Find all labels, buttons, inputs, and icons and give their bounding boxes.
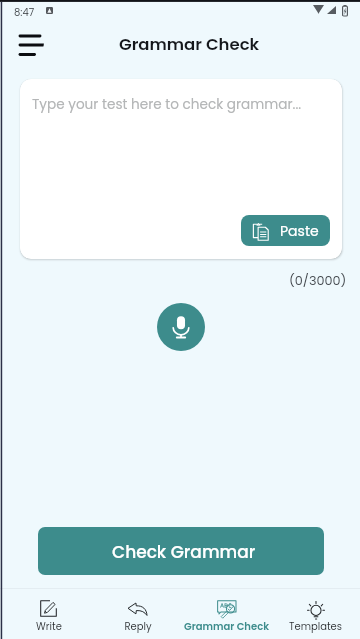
staticText: Grammar Check (119, 33, 260, 56)
staticText: Templates (289, 619, 342, 633)
button[interactable]: Write (4, 589, 93, 639)
button[interactable]: Menu (8, 24, 44, 60)
button[interactable]: Type your test here to check grammar... (20, 79, 342, 259)
staticText: (0/3000) (289, 272, 347, 290)
staticText: Reply (124, 619, 152, 633)
staticText: Write (36, 619, 62, 633)
button[interactable]: Templates (271, 589, 360, 639)
staticText: Grammar Check (184, 619, 269, 633)
button[interactable]: Check Grammar (38, 527, 324, 575)
button[interactable]: Reply (93, 589, 182, 639)
staticText: Check Grammar (112, 540, 256, 564)
button[interactable]: Voice input (157, 303, 205, 351)
button[interactable]: Grammar Check (182, 589, 271, 639)
staticText: 8:47 (14, 5, 35, 19)
button[interactable]: Paste (241, 215, 330, 246)
staticText: Type your test here to check grammar... (32, 95, 302, 114)
staticText: Paste (280, 221, 319, 241)
